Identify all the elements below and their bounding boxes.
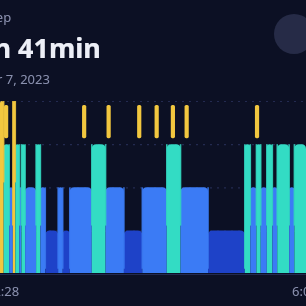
staticText: 22:28 [0, 282, 20, 300]
staticText: Sleep [0, 8, 12, 26]
button[interactable] [0, 101, 306, 273]
button[interactable]: More options [274, 14, 306, 54]
staticText: 6:09 [292, 282, 306, 300]
staticText: 7h 41min [0, 29, 101, 66]
staticText: Mar 7, 2023 [0, 70, 50, 88]
